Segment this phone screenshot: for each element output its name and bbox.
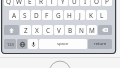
button[interactable]: N [76, 25, 86, 35]
staticText: D [34, 11, 39, 20]
button[interactable]: Q [4, 0, 13, 6]
button[interactable]: Dictation [28, 39, 38, 49]
button[interactable]: L [97, 10, 107, 20]
button[interactable]: Y [58, 0, 68, 6]
button[interactable]: Z [20, 25, 31, 35]
button[interactable]: B [65, 25, 75, 35]
staticText: N [79, 26, 84, 35]
button[interactable]: return [88, 39, 112, 49]
staticText: C [46, 26, 51, 35]
button[interactable]: C [43, 25, 53, 35]
staticText: V [57, 26, 61, 35]
button[interactable]: space [39, 39, 87, 49]
staticText: H [67, 11, 72, 20]
staticText: J [79, 11, 81, 20]
button[interactable]: V [54, 25, 64, 35]
button[interactable]: J [75, 10, 85, 20]
button[interactable]: I [80, 0, 90, 6]
staticText: K [89, 11, 93, 20]
staticText: T [50, 0, 54, 6]
staticText: L [100, 11, 104, 20]
button[interactable]: H [64, 10, 74, 20]
button[interactable]: W [14, 0, 24, 6]
button[interactable]: U [69, 0, 79, 6]
button[interactable]: A [9, 10, 19, 20]
button[interactable]: Backspace [98, 25, 112, 35]
button[interactable]: D [31, 10, 41, 20]
button[interactable]: T [47, 0, 57, 6]
staticText: F [45, 11, 49, 20]
staticText: space [57, 41, 69, 47]
staticText: U [72, 0, 77, 6]
staticText: X [35, 26, 39, 35]
staticText: S [23, 11, 27, 20]
button[interactable]: M [87, 25, 97, 35]
staticText: A [12, 11, 17, 20]
button[interactable]: E [25, 0, 35, 6]
staticText: M [89, 26, 95, 35]
button[interactable]: K [86, 10, 96, 20]
button[interactable]: G [53, 10, 63, 20]
button[interactable]: F [42, 10, 52, 20]
button[interactable]: Shift [4, 25, 19, 35]
staticText: B [68, 26, 73, 35]
button[interactable]: S [20, 10, 30, 20]
staticText: O [94, 0, 99, 6]
staticText: Y [61, 0, 65, 6]
button[interactable]: 123 [4, 39, 16, 49]
button[interactable]: P [102, 0, 112, 6]
staticText: R [39, 0, 43, 6]
button[interactable]: X [32, 25, 42, 35]
staticText: Z [24, 26, 28, 35]
staticText: P [105, 0, 109, 6]
staticText: 123 [7, 42, 14, 47]
staticText: G [56, 11, 61, 20]
staticText: return [94, 41, 107, 47]
staticText: E [28, 0, 32, 6]
staticText: Q [6, 0, 11, 6]
staticText: W [16, 0, 22, 6]
button[interactable]: O [91, 0, 101, 6]
staticText: I [84, 0, 87, 6]
button[interactable]: R [36, 0, 46, 6]
button[interactable]: Emoji [17, 39, 27, 49]
